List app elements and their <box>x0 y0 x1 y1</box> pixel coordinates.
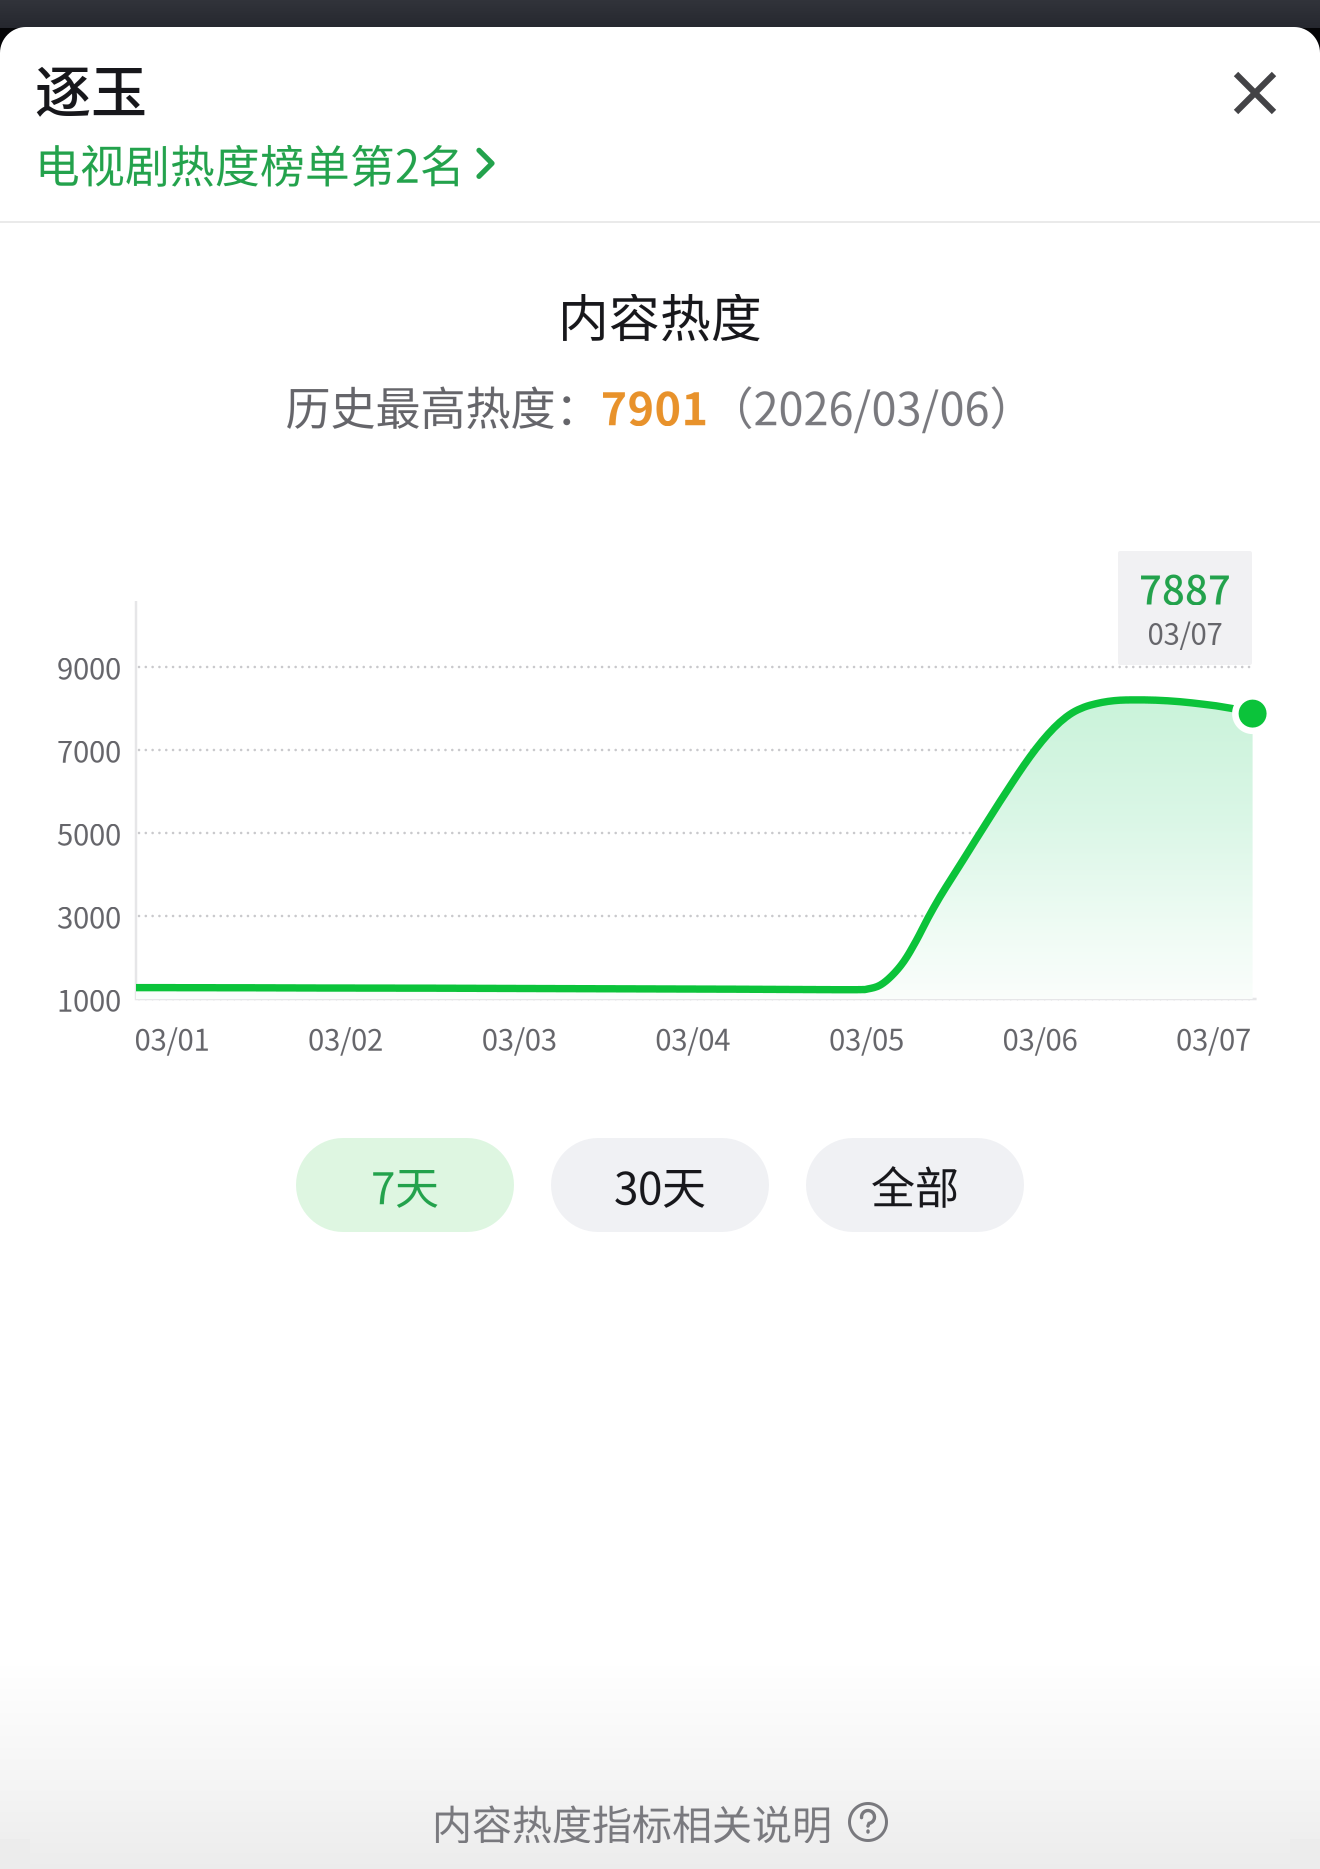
staticText: 03/03 <box>482 1017 557 1059</box>
staticText: 逐玉 <box>35 47 147 128</box>
staticText: 30天 <box>614 1153 706 1217</box>
staticText: 03/02 <box>308 1017 383 1059</box>
staticText: 7901 <box>600 373 708 438</box>
staticText: 9000 <box>57 646 121 688</box>
button[interactable]: 关闭 <box>0 27 100 127</box>
button[interactable]: 7天 <box>296 1138 514 1232</box>
staticText: 03/01 <box>134 1017 209 1059</box>
staticText: 7000 <box>57 729 121 771</box>
staticText: 7887 <box>1139 558 1231 616</box>
staticText: （2026/03/06） <box>708 373 1034 438</box>
staticText: 全部 <box>871 1153 959 1217</box>
staticText: 3000 <box>57 895 121 937</box>
staticText: 03/07 <box>1176 1017 1251 1059</box>
staticText: 历史最高热度： <box>285 373 600 438</box>
staticText: 内容热度指标相关说明 <box>432 1793 832 1851</box>
staticText: 03/04 <box>655 1017 730 1059</box>
button[interactable]: 30天 <box>551 1138 769 1232</box>
button[interactable]: 内容热度指标相关说明 <box>0 1786 1320 1858</box>
staticText: 5000 <box>57 812 121 854</box>
staticText: 03/07 <box>1147 611 1222 653</box>
button[interactable]: 逐玉 <box>0 27 620 205</box>
staticText: 7天 <box>371 1153 439 1217</box>
staticText: 1000 <box>57 978 121 1020</box>
staticText: 电视剧热度榜单第2名 <box>35 131 465 196</box>
staticText: 03/05 <box>829 1017 904 1059</box>
staticText: 03/06 <box>1002 1017 1077 1059</box>
button[interactable]: 全部 <box>806 1138 1024 1232</box>
staticText: 内容热度 <box>558 278 762 351</box>
